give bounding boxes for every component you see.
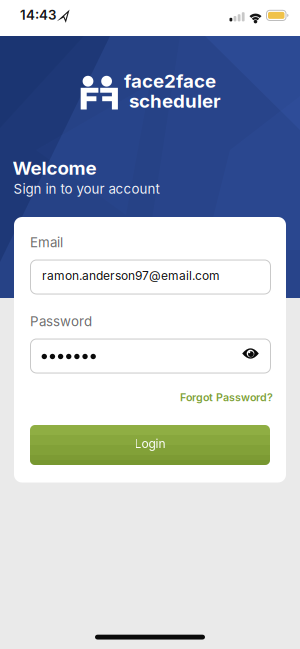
button[interactable]: Login (30, 425, 270, 465)
staticText: Forgot Password? (180, 391, 273, 404)
staticText: 14:43 (20, 7, 56, 23)
staticText: Password (30, 313, 92, 329)
button[interactable] (235, 338, 265, 368)
staticText: ramon.anderson97@email.com (42, 268, 220, 283)
button[interactable]: ramon.anderson97@email.com (30, 259, 271, 294)
staticText: Email (30, 234, 63, 250)
staticText: scheduler (129, 90, 221, 112)
staticText: Login (134, 436, 165, 451)
staticText: face2face (124, 70, 216, 92)
button[interactable]: Forgot Password? (180, 391, 273, 404)
button[interactable] (30, 338, 271, 373)
staticText: Welcome (12, 157, 96, 179)
staticText: Sign in to your account (13, 181, 159, 197)
